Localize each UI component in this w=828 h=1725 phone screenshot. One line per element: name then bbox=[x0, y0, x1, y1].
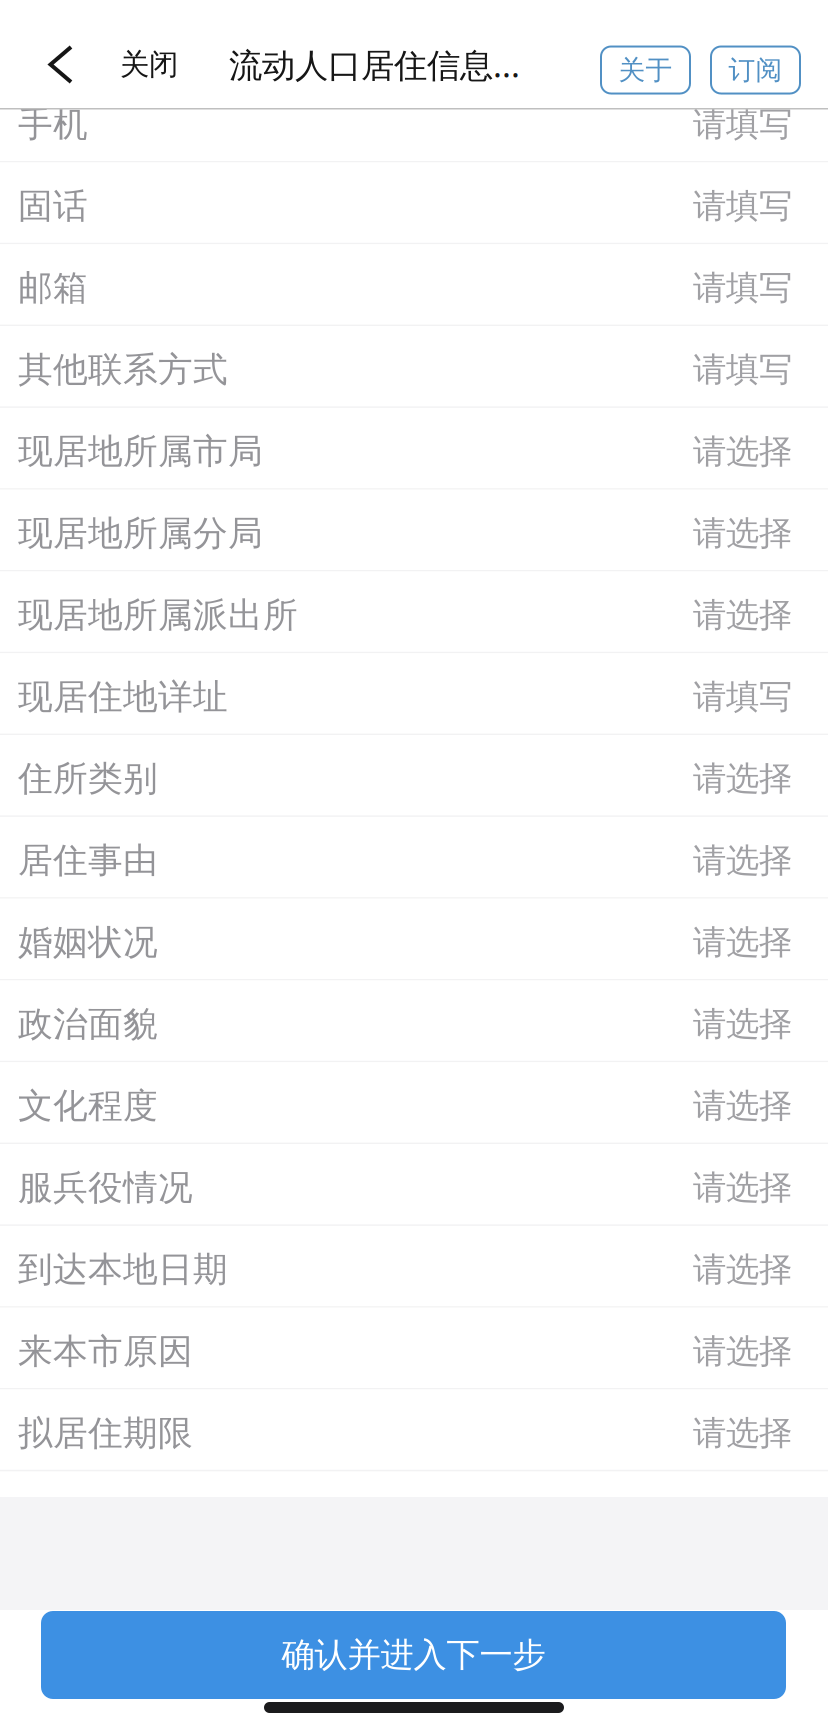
button[interactable]: 固话 bbox=[0, 162, 828, 244]
staticText: 现居住地详址 bbox=[18, 676, 228, 718]
button[interactable]: 其他联系方式 bbox=[0, 326, 828, 408]
button[interactable]: 婚姻状况 bbox=[0, 899, 828, 980]
staticText: 请选择 bbox=[693, 758, 792, 799]
staticText: 住所类别 bbox=[18, 757, 158, 800]
staticText: 文化程度 bbox=[18, 1085, 158, 1127]
staticText: 请选择 bbox=[693, 922, 792, 963]
button[interactable]: 现居住地详址 bbox=[0, 653, 828, 735]
button[interactable]: 现居地所属分局 bbox=[0, 490, 828, 571]
staticText: 订阅 bbox=[728, 54, 782, 86]
staticText: 手机 bbox=[18, 103, 88, 146]
staticText: 关闭 bbox=[120, 46, 178, 82]
staticText: 关于 bbox=[618, 54, 672, 86]
button[interactable]: 文化程度 bbox=[0, 1062, 828, 1144]
button[interactable]: 拟居住期限 bbox=[0, 1389, 828, 1471]
staticText: 现居地所属分局 bbox=[18, 512, 263, 555]
staticText: 来本市原因 bbox=[18, 1330, 193, 1373]
staticText: 请选择 bbox=[693, 595, 792, 636]
staticText: 流动人口居住信息... bbox=[229, 42, 520, 87]
staticText: 婚姻状况 bbox=[18, 921, 158, 964]
staticText: 请填写 bbox=[693, 267, 792, 308]
staticText: 居住事由 bbox=[18, 839, 158, 882]
staticText: 政治面貌 bbox=[18, 1003, 158, 1045]
button[interactable]: 来本市原因 bbox=[0, 1308, 828, 1389]
staticText: 固话 bbox=[18, 185, 88, 227]
staticText: 其他联系方式 bbox=[18, 348, 228, 391]
staticText: 现居地所属市局 bbox=[18, 430, 263, 473]
staticText: 服兵役情况 bbox=[18, 1166, 193, 1209]
staticText: 请选择 bbox=[693, 1331, 792, 1372]
button[interactable]: 服兵役情况 bbox=[0, 1144, 828, 1226]
button[interactable]: 关于 bbox=[601, 46, 690, 93]
staticText: 请填写 bbox=[693, 676, 792, 717]
staticText: 请选择 bbox=[693, 840, 792, 881]
staticText: 请选择 bbox=[693, 1249, 792, 1290]
button[interactable]: 政治面貌 bbox=[0, 980, 828, 1062]
button[interactable]: 现居地所属市局 bbox=[0, 408, 828, 490]
staticText: 拟居住期限 bbox=[18, 1412, 193, 1454]
staticText: 请选择 bbox=[693, 1413, 792, 1454]
staticText: 现居地所属派出所 bbox=[18, 594, 298, 636]
staticText: 请填写 bbox=[693, 349, 792, 390]
button[interactable]: 确认并进入下一步 bbox=[41, 1611, 786, 1699]
staticText: 请选择 bbox=[693, 431, 792, 472]
staticText: 请选择 bbox=[693, 1167, 792, 1208]
button[interactable]: 到达本地日期 bbox=[0, 1226, 828, 1308]
staticText: 请选择 bbox=[693, 513, 792, 554]
staticText: 请填写 bbox=[693, 186, 792, 227]
staticText: 请选择 bbox=[693, 1004, 792, 1045]
staticText: 确认并进入下一步 bbox=[281, 1634, 545, 1675]
button[interactable]: 邮箱 bbox=[0, 244, 828, 326]
button[interactable]: 居住事由 bbox=[0, 817, 828, 899]
staticText: 邮箱 bbox=[18, 267, 88, 309]
staticText: 到达本地日期 bbox=[18, 1248, 228, 1291]
button[interactable]: 订阅 bbox=[711, 46, 800, 93]
staticText: 请选择 bbox=[693, 1085, 792, 1126]
button[interactable]: 住所类别 bbox=[0, 735, 828, 817]
button[interactable]: 手机 bbox=[0, 81, 828, 162]
button[interactable]: 现居地所属派出所 bbox=[0, 571, 828, 653]
staticText: 请填写 bbox=[693, 104, 792, 145]
button[interactable]: 关闭 bbox=[0, 10, 188, 118]
